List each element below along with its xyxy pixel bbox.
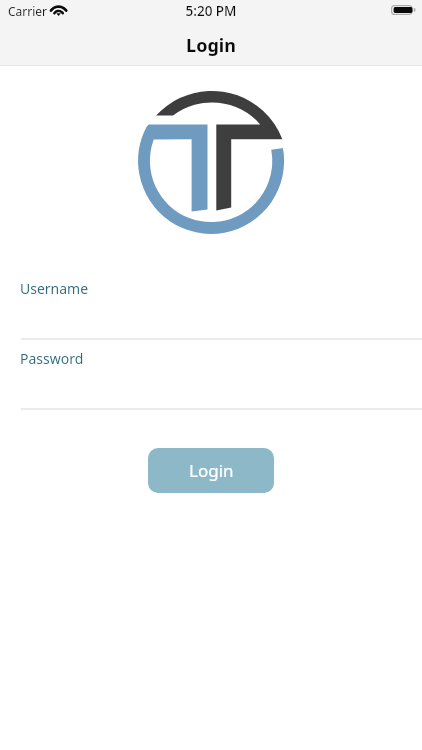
staticText: Login bbox=[0, 33, 422, 58]
staticText: 5:20 PM bbox=[0, 2, 422, 20]
button[interactable]: Login bbox=[148, 448, 274, 493]
staticText: Password bbox=[20, 349, 84, 368]
other: Wifi signal bbox=[50, 3, 68, 17]
other: Battery full bbox=[391, 5, 416, 15]
staticText: Login bbox=[189, 459, 234, 482]
staticText: Carrier bbox=[8, 3, 48, 19]
staticText: Username bbox=[20, 279, 89, 298]
